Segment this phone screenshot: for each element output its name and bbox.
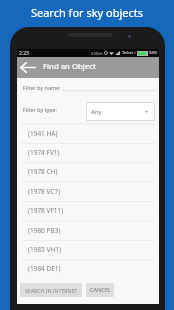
staticText: 0.0Kb/s [91, 51, 103, 56]
button[interactable]: (1980 PB3) [17, 221, 159, 240]
staticText: (1978 VF11) [28, 206, 64, 215]
staticText: (1978 VC7) [28, 187, 61, 196]
staticText: (1984 DE1) [28, 264, 61, 273]
staticText: 2:23 [19, 50, 29, 57]
staticText: (1980 PB3) [28, 226, 61, 235]
staticText: Any [91, 108, 102, 116]
staticText: 94% [149, 50, 158, 56]
staticText: (1941 HA) [28, 129, 58, 138]
button[interactable]: SEARCH IN INTERNET [20, 283, 82, 297]
button[interactable]: (1978 VF11) [17, 201, 159, 220]
staticText: Filter by name: [23, 84, 61, 91]
button[interactable]: (1984 DE1) [17, 259, 159, 278]
button[interactable]: CANCEL [86, 283, 114, 297]
staticText: SEARCH IN INTERNET [25, 287, 78, 294]
button[interactable]: (1941 HA) [17, 124, 159, 143]
button[interactable]: (1978 VC7) [17, 182, 159, 201]
button[interactable]: (1983 VH1) [17, 240, 159, 259]
staticText: (1978 CH) [28, 167, 58, 176]
button[interactable]: Back [17, 57, 38, 78]
button[interactable]: (1974 FV1) [17, 143, 159, 162]
staticText: Find an Object [43, 61, 96, 72]
staticText: Filter by type: [23, 106, 58, 113]
staticText: (1983 VH1) [28, 245, 61, 254]
staticText: (1974 FV1) [28, 148, 60, 157]
staticText: Telcel [122, 50, 133, 56]
button[interactable]: (1978 CH) [17, 162, 159, 181]
staticText: Search for sky objects [0, 5, 174, 20]
button[interactable]: Any [86, 102, 155, 121]
staticText: CANCEL [90, 286, 111, 294]
